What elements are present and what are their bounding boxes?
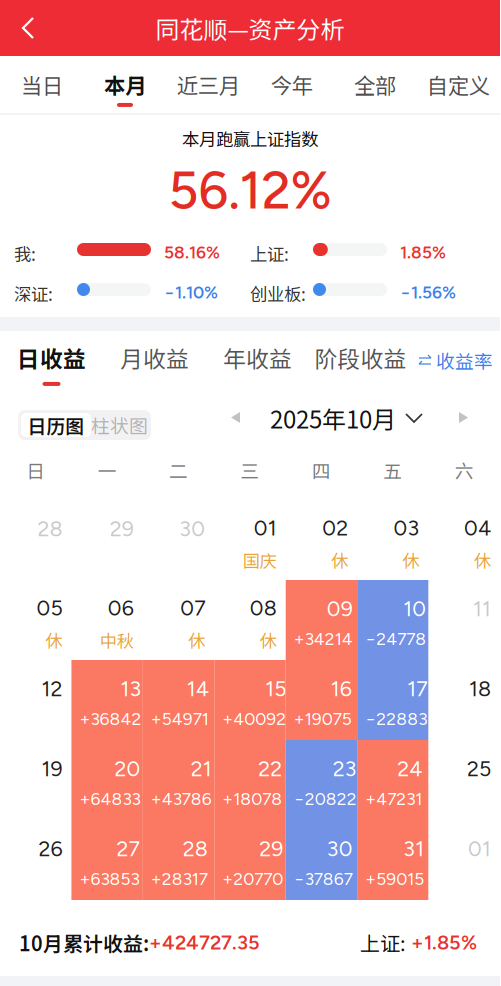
- staticText: 国庆: [243, 548, 277, 573]
- staticText: −1.56%: [400, 282, 456, 303]
- staticText: 22: [258, 756, 282, 782]
- staticText: 今年: [271, 69, 313, 100]
- staticText: 19: [41, 756, 62, 782]
- button[interactable]: 当日: [0, 56, 83, 113]
- staticText: 休: [474, 548, 491, 573]
- staticText: 08: [250, 595, 277, 621]
- staticText: 24: [397, 756, 422, 782]
- button[interactable]: 全部: [333, 56, 417, 113]
- staticText: 25: [467, 756, 491, 782]
- staticText: +28317: [151, 869, 208, 889]
- staticText: 20: [114, 756, 140, 782]
- staticText: 中秋: [100, 628, 134, 653]
- button[interactable]: 下一月: [442, 404, 482, 432]
- staticText: 全部: [354, 69, 396, 100]
- staticText: 柱状图: [91, 411, 148, 438]
- staticText: 深证:: [14, 281, 53, 306]
- staticText: 04: [464, 515, 491, 541]
- staticText: 五: [383, 456, 402, 483]
- staticText: 01: [254, 515, 277, 541]
- staticText: 自定义: [427, 69, 490, 100]
- staticText: 日: [26, 456, 45, 483]
- button[interactable]: 上一月: [215, 404, 255, 432]
- button[interactable]: 本月: [83, 56, 167, 113]
- staticText: 06: [108, 595, 134, 621]
- staticText: 二: [169, 456, 188, 483]
- staticText: 31: [403, 836, 424, 862]
- button[interactable]: 收益率: [412, 331, 500, 390]
- staticText: 09: [327, 596, 353, 622]
- button[interactable]: 选择月份: [400, 404, 428, 432]
- staticText: 23: [333, 756, 357, 782]
- staticText: +47231: [365, 789, 422, 809]
- staticText: 1.85%: [400, 242, 446, 263]
- staticText: 2025年10月: [270, 401, 396, 435]
- staticText: +59015: [365, 869, 424, 889]
- staticText: 休: [45, 628, 62, 653]
- staticText: 月收益: [120, 341, 189, 374]
- staticText: 30: [179, 516, 205, 542]
- button[interactable]: 年收益: [206, 331, 309, 390]
- staticText: 近三月: [177, 69, 240, 100]
- staticText: 30: [327, 836, 353, 862]
- staticText: 12: [41, 676, 62, 702]
- staticText: 日收益: [17, 341, 86, 374]
- staticText: 07: [180, 595, 205, 621]
- staticText: 阶段收益: [314, 341, 406, 374]
- staticText: −22883: [365, 709, 427, 729]
- staticText: 05: [36, 595, 62, 621]
- staticText: 26: [38, 836, 62, 862]
- staticText: −37867: [294, 869, 353, 889]
- button[interactable]: 今年: [250, 56, 333, 113]
- staticText: +43786: [151, 789, 212, 809]
- staticText: 16: [331, 676, 352, 702]
- staticText: 三: [240, 456, 259, 483]
- staticText: 休: [260, 628, 277, 653]
- staticText: +18078: [222, 789, 282, 809]
- staticText: 28: [183, 836, 208, 862]
- staticText: 年收益: [223, 341, 292, 374]
- staticText: +36842: [79, 709, 141, 729]
- staticText: 六: [455, 456, 474, 483]
- staticText: 58.16%: [164, 242, 220, 263]
- staticText: 01: [468, 836, 491, 862]
- staticText: 休: [403, 548, 420, 573]
- staticText: 21: [191, 756, 212, 782]
- staticText: −20822: [294, 789, 357, 809]
- staticText: 本月: [104, 69, 146, 100]
- button[interactable]: 日收益: [0, 331, 103, 390]
- staticText: 上证:: [250, 241, 289, 266]
- staticText: 本月跑赢上证指数: [182, 126, 318, 151]
- staticText: 四: [312, 456, 331, 483]
- button[interactable]: 日历图: [21, 413, 91, 437]
- staticText: 我:: [14, 241, 36, 266]
- staticText: 18: [469, 676, 491, 702]
- staticText: 10: [403, 596, 426, 622]
- staticText: 02: [322, 515, 348, 541]
- staticText: 29: [110, 516, 134, 542]
- staticText: +54971: [151, 709, 209, 729]
- staticText: 11: [473, 596, 491, 622]
- staticText: 03: [394, 515, 420, 541]
- staticText: +40092: [222, 709, 286, 729]
- staticText: 当日: [21, 69, 63, 100]
- staticText: 10月累计收益:: [19, 928, 149, 957]
- staticText: 一: [98, 456, 117, 483]
- staticText: +1.85%: [406, 930, 477, 954]
- staticText: 收益率: [436, 347, 493, 374]
- button[interactable]: 阶段收益: [309, 331, 412, 390]
- staticText: 上证:: [360, 928, 406, 957]
- staticText: 56.12%: [168, 159, 331, 221]
- staticText: 休: [331, 548, 348, 573]
- button[interactable]: 自定义: [417, 56, 500, 113]
- button[interactable]: 柱状图: [91, 413, 148, 437]
- staticText: −24778: [365, 629, 426, 649]
- button[interactable]: 返回: [0, 0, 56, 56]
- button[interactable]: 月收益: [103, 331, 206, 390]
- staticText: +19075: [294, 709, 352, 729]
- staticText: 17: [407, 676, 427, 702]
- staticText: +34214: [294, 629, 353, 649]
- button[interactable]: 近三月: [167, 56, 250, 113]
- staticText: 27: [116, 836, 139, 862]
- staticText: +424727.35: [149, 930, 260, 954]
